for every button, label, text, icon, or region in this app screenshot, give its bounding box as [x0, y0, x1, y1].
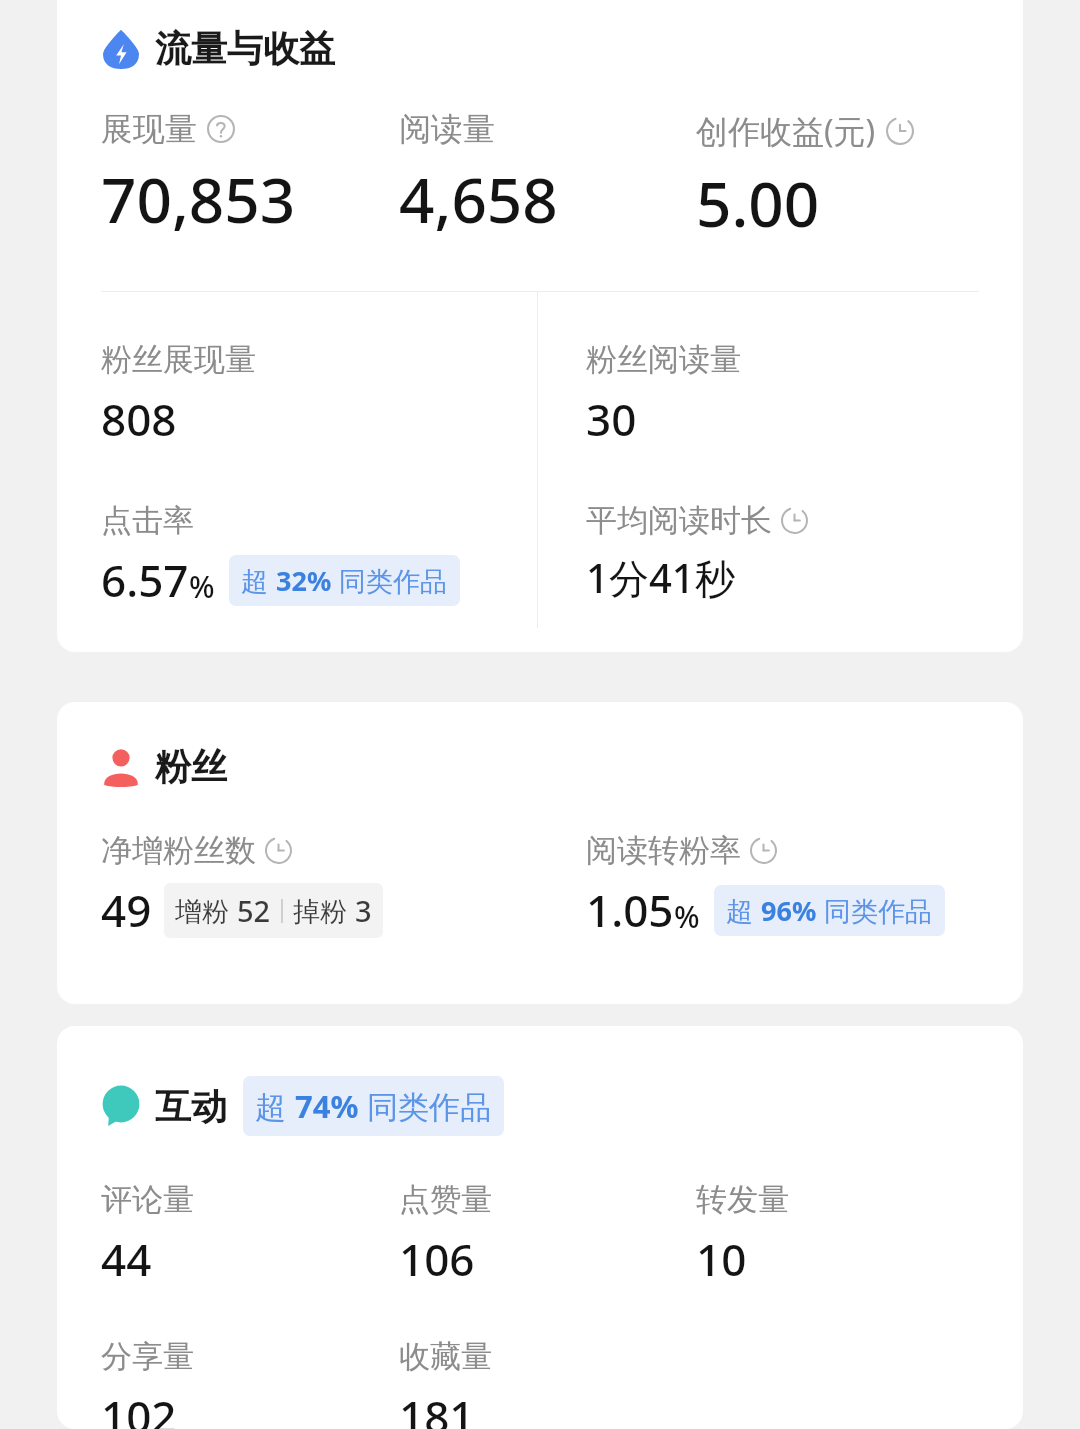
button[interactable]: 阅读量 — [399, 109, 696, 241]
staticText: 181 — [399, 1386, 475, 1429]
staticText: 106 — [399, 1229, 475, 1289]
button[interactable]: 展现量 — [101, 109, 399, 241]
staticText: 52 — [237, 891, 271, 930]
staticText: 6.57 — [101, 550, 189, 610]
button[interactable]: 粉丝阅读量 — [586, 340, 741, 449]
staticText: 净增粉丝数 — [101, 831, 256, 870]
button[interactable]: 超 — [243, 1076, 504, 1136]
staticText: 增粉 — [175, 892, 237, 929]
staticText: 44 — [101, 1229, 152, 1289]
other: 流量与收益 — [101, 29, 141, 69]
staticText: 评论量 — [101, 1180, 194, 1219]
other: 数据更新时间 — [750, 837, 777, 864]
button[interactable]: 粉丝 — [57, 740, 1023, 793]
staticText: % — [674, 896, 700, 937]
staticText: 粉丝 — [155, 744, 227, 789]
staticText: 32% — [276, 562, 332, 599]
staticText: 点击率 — [101, 501, 194, 540]
staticText: 1.05 — [586, 880, 674, 940]
staticText: 转发量 — [696, 1180, 789, 1219]
button[interactable]: 评论量 — [101, 1180, 399, 1289]
staticText: 同类作品 — [359, 1085, 492, 1127]
staticText: 阅读量 — [399, 109, 495, 149]
staticText: 3 — [355, 891, 372, 930]
button[interactable]: 转发量 — [696, 1180, 993, 1289]
staticText: 同类作品 — [817, 892, 933, 929]
button[interactable]: 收藏量 — [399, 1337, 696, 1429]
staticText: 10 — [696, 1229, 747, 1289]
button[interactable]: 流量与收益 — [57, 0, 1023, 75]
other: 互动 — [101, 1086, 141, 1126]
staticText: 1分41秒 — [586, 550, 735, 605]
staticText: 49 — [101, 880, 152, 940]
staticText: 102 — [101, 1386, 177, 1429]
staticText: 展现量 — [101, 109, 197, 149]
staticText: % — [189, 566, 215, 607]
button[interactable]: 增粉 — [164, 883, 383, 938]
staticText: 创作收益(元) — [696, 109, 876, 153]
staticText: 掉粉 — [293, 892, 355, 929]
staticText: 70,853 — [101, 157, 296, 241]
staticText: 粉丝阅读量 — [586, 340, 741, 379]
staticText: 分享量 — [101, 1337, 194, 1376]
other: 数据更新时间 — [265, 837, 292, 864]
staticText: 阅读转粉率 — [586, 831, 741, 870]
staticText: 96% — [761, 892, 817, 929]
button[interactable]: 超 — [714, 885, 945, 936]
staticText: 5.00 — [696, 161, 820, 245]
button[interactable]: 分享量 — [101, 1337, 399, 1429]
staticText: 互动 — [155, 1084, 227, 1129]
other: 数据更新时间 — [886, 117, 914, 145]
staticText: 点赞量 — [399, 1180, 492, 1219]
button[interactable]: 互动 — [57, 1072, 1023, 1140]
other: 粉丝 — [101, 747, 141, 787]
staticText: 超 — [241, 562, 276, 599]
staticText: 收藏量 — [399, 1337, 492, 1376]
staticText: 超 — [255, 1085, 295, 1127]
staticText: 平均阅读时长 — [586, 501, 772, 540]
button[interactable]: 超 — [229, 555, 460, 606]
staticText: 流量与收益 — [155, 26, 335, 71]
staticText: 30 — [586, 389, 637, 449]
button[interactable]: 粉丝展现量 — [101, 340, 256, 449]
staticText: 超 — [726, 892, 761, 929]
other: 说明 — [207, 115, 235, 143]
button[interactable]: 点赞量 — [399, 1180, 696, 1289]
button[interactable]: 创作收益(元) — [696, 109, 993, 245]
staticText: 74% — [295, 1085, 359, 1127]
other: 数据更新时间 — [781, 507, 808, 534]
staticText: 同类作品 — [332, 562, 448, 599]
staticText: 粉丝展现量 — [101, 340, 256, 379]
staticText: 4,658 — [399, 157, 558, 241]
staticText: 808 — [101, 389, 177, 449]
